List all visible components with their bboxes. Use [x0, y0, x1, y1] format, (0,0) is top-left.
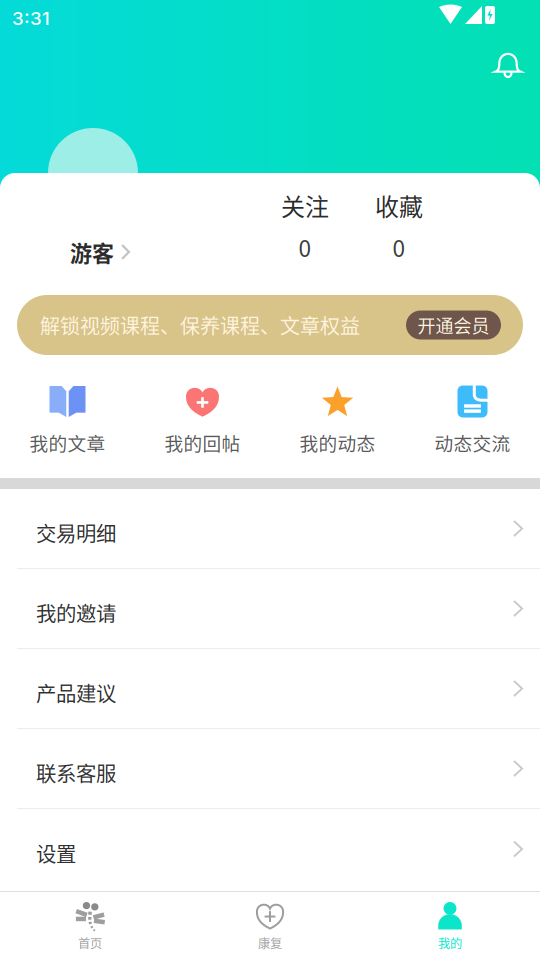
staticText: 产品建议 [36, 678, 116, 707]
button[interactable]: 设置 [0, 809, 540, 889]
staticText: 我的文章 [29, 429, 105, 456]
staticText: 开通会员 [417, 312, 489, 338]
staticText: 交易明细 [36, 518, 116, 547]
button[interactable]: 关注 [258, 188, 352, 264]
staticText: 我的回帖 [164, 429, 240, 456]
button[interactable]: 收藏 [352, 188, 446, 264]
staticText: 设置 [36, 838, 76, 868]
staticText: 游客 [70, 236, 114, 268]
staticText: 关注 [281, 188, 329, 223]
staticText: 3:31 [12, 7, 50, 30]
staticText: 我的 [438, 934, 462, 952]
button[interactable]: 交易明细 [0, 489, 540, 569]
staticText: 我的邀请 [36, 598, 116, 627]
staticText: 0 [392, 231, 405, 264]
staticText: 解锁视频课程、保养课程、文章权益 [40, 310, 360, 339]
button[interactable]: 产品建议 [0, 649, 540, 729]
button[interactable]: 我的文章 [0, 385, 135, 456]
button[interactable]: 康复 [180, 892, 360, 960]
button[interactable]: 我的动态 [270, 385, 405, 456]
button[interactable]: Notifications [483, 40, 533, 90]
button[interactable]: 首页 [0, 892, 180, 960]
staticText: 联系客服 [36, 758, 116, 787]
button[interactable]: 我的 [360, 892, 540, 960]
staticText: 动态交流 [434, 429, 510, 456]
staticText: 首页 [78, 934, 102, 952]
button[interactable]: 游客 [70, 236, 130, 268]
button[interactable]: 联系客服 [0, 729, 540, 809]
staticText: 收藏 [375, 188, 423, 223]
staticText: 我的动态 [299, 429, 375, 456]
button[interactable]: 解锁视频课程、保养课程、文章权益 [0, 295, 540, 355]
staticText: 0 [298, 231, 311, 264]
staticText: 康复 [258, 934, 282, 952]
button[interactable]: 我的邀请 [0, 569, 540, 649]
button[interactable]: 我的回帖 [135, 385, 270, 456]
button[interactable]: 动态交流 [405, 385, 540, 456]
